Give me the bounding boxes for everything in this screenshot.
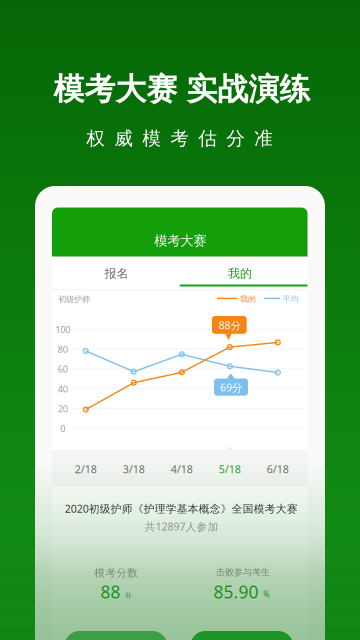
staticText: 40 bbox=[58, 383, 68, 395]
staticText: % bbox=[263, 589, 270, 600]
staticText: 80 bbox=[58, 343, 68, 355]
button[interactable]: 返回 bbox=[0, 0, 360, 640]
button[interactable]: 报名 bbox=[53, 258, 180, 288]
staticText: 60 bbox=[58, 363, 68, 375]
staticText: 模考大赛 bbox=[154, 233, 206, 249]
staticText: 模考分数 bbox=[94, 566, 138, 579]
staticText: 模考大赛 实战演练 bbox=[53, 70, 310, 108]
staticText: 6/18 bbox=[267, 462, 289, 476]
staticText: 击败参与考生 bbox=[216, 566, 270, 578]
staticText: 权 威 模 考 估 分 准 bbox=[86, 127, 273, 150]
staticText: 69分 bbox=[220, 380, 243, 394]
staticText: 5/18 bbox=[219, 462, 241, 476]
staticText: 20 bbox=[58, 402, 68, 415]
staticText: 分 bbox=[125, 591, 132, 599]
staticText: 平均 bbox=[283, 294, 299, 304]
staticText: 3/18 bbox=[123, 462, 145, 476]
staticText: 我的 bbox=[240, 294, 256, 304]
button[interactable]: 查看解析 bbox=[64, 631, 167, 640]
staticText: 2020初级护师《护理学基本概念》全国模考大赛 bbox=[65, 501, 298, 516]
staticText: 我的 bbox=[228, 266, 252, 281]
button[interactable]: 我的 bbox=[176, 258, 304, 288]
staticText: 报名 bbox=[104, 266, 128, 281]
staticText: 88 bbox=[100, 580, 120, 603]
staticText: 2/18 bbox=[75, 462, 97, 476]
button[interactable]: 再考一次 bbox=[190, 631, 293, 640]
staticText: 0 bbox=[60, 422, 65, 435]
staticText: 88分 bbox=[218, 318, 241, 332]
staticText: 共12897人参加 bbox=[144, 519, 218, 533]
staticText: 初级护师 bbox=[58, 294, 90, 304]
staticText: 100 bbox=[55, 323, 70, 336]
staticText: 4/18 bbox=[171, 462, 193, 476]
staticText: 85.90 bbox=[213, 580, 258, 603]
